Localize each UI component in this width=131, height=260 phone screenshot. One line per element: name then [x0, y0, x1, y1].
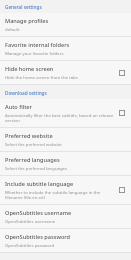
button[interactable]: Hide home screen	[117, 68, 127, 78]
staticText: Manage your favorite folders	[5, 50, 64, 56]
staticText: Hide home screen	[5, 65, 54, 73]
button[interactable]: Preferred languages	[0, 152, 131, 175]
staticText: General settings	[5, 4, 42, 10]
staticText: OpenSubtitles password	[5, 242, 55, 248]
staticText: OpenSubtitles password	[5, 233, 71, 241]
staticText: Auto filter	[5, 103, 32, 111]
staticText: default	[5, 26, 20, 32]
button[interactable]: Auto filter	[117, 108, 127, 118]
staticText: Favorite internal folders	[5, 41, 70, 49]
staticText: OpenSubtitles username	[5, 209, 72, 217]
button[interactable]: Favorite internal folders	[0, 37, 131, 60]
button[interactable]: Auto filter	[0, 99, 131, 127]
button[interactable]: Include subtitle language	[0, 176, 131, 204]
staticText: Manage profiles	[5, 17, 49, 25]
staticText: Select the preferred website	[5, 141, 62, 147]
button[interactable]: Manage profiles	[0, 13, 131, 36]
staticText: Automatically filter the best subtitle, …	[5, 112, 114, 123]
staticText: Select the preferred languages	[5, 165, 68, 171]
staticText: Hide the home screen from the tabs	[5, 74, 78, 80]
staticText: Include subtitle language	[5, 180, 74, 188]
staticText: Preferred languages	[5, 156, 60, 164]
button[interactable]: Hide home screen	[0, 61, 131, 84]
button[interactable]: OpenSubtitles password	[0, 229, 131, 252]
button[interactable]: Preferred website	[0, 128, 131, 151]
staticText: OpenSubtitles username	[5, 218, 56, 224]
button[interactable]: OpenSubtitles username	[0, 205, 131, 228]
staticText: Whether to include the subtitle language…	[5, 189, 114, 200]
staticText: Download settings	[5, 90, 47, 96]
button[interactable]: Include subtitle language	[117, 185, 127, 195]
staticText: Preferred website	[5, 132, 53, 140]
